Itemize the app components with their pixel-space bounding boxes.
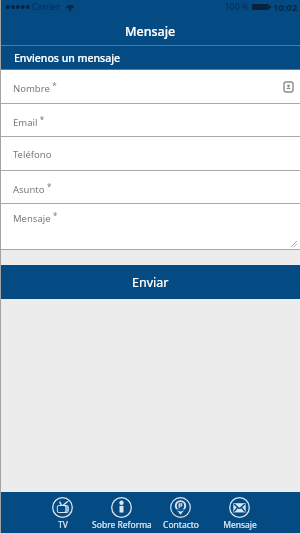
staticText: Mensaje * [13,210,58,224]
button[interactable]: Contacto [151,492,210,533]
staticText: Mensaje [125,23,176,40]
button[interactable]: Email * [1,104,300,137]
staticText: Sobre Reforma [92,519,151,531]
staticText: Asunto * [13,181,52,195]
staticText: Enviar [132,274,169,291]
button[interactable]: Nombre * [1,70,300,104]
staticText: 100 % [225,1,249,13]
staticText: Carrier [32,1,60,13]
button[interactable]: TV [33,492,92,533]
button[interactable]: Asunto * [1,171,300,204]
staticText: TV [58,519,68,531]
button[interactable]: Elegir contacto [284,82,293,92]
button[interactable]: Enviar [1,265,300,299]
staticText: Teléfono [13,148,52,161]
staticText: Envienos un mensaje [14,51,121,65]
staticText: Email * [13,114,45,128]
staticText: Contacto [163,519,199,531]
button[interactable]: Sobre Reforma [92,492,151,533]
button[interactable]: Mensaje * [1,204,300,250]
staticText: Mensaje [223,519,257,531]
staticText: Nombre * [13,80,57,94]
button[interactable]: Teléfono [1,137,300,171]
staticText: 10:02 [273,1,298,14]
button[interactable]: Mensaje [210,492,269,533]
